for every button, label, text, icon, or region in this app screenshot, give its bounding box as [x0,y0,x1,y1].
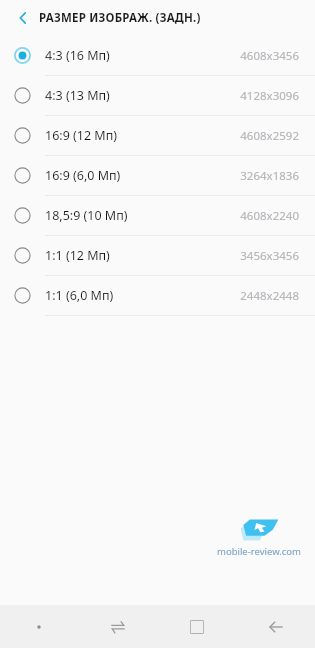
staticText: 4608x2592 [240,128,299,144]
staticText: 1:1 (6,0 Мп) [45,287,114,304]
staticText: 3456x3456 [240,248,299,264]
button[interactable]: Back [236,605,315,648]
staticText: 4608x2240 [240,208,299,224]
button[interactable]: Home [157,605,236,648]
button[interactable]: 16:9 (12 Мп) [0,116,315,155]
staticText: 16:9 (6,0 Мп) [45,167,121,184]
staticText: 4128x3096 [240,88,299,104]
staticText: 4608x3456 [240,48,299,64]
button[interactable]: 1:1 (6,0 Мп) [0,276,315,315]
staticText: 16:9 (12 Мп) [45,127,118,144]
staticText: РАЗМЕР ИЗОБРАЖ. (ЗАДН.) [39,10,201,26]
button[interactable]: Recents [78,605,157,648]
staticText: 3264x1836 [240,168,299,184]
staticText: 4:3 (13 Мп) [45,87,110,104]
button[interactable]: 18,5:9 (10 Мп) [0,196,315,235]
button[interactable]: 1:1 (12 Мп) [0,236,315,275]
staticText: 4:3 (16 Мп) [45,47,110,64]
staticText: 18,5:9 (10 Мп) [45,207,128,224]
button[interactable]: 16:9 (6,0 Мп) [0,156,315,195]
staticText: 2448x2448 [240,288,299,304]
button[interactable]: Back [8,3,38,33]
button[interactable]: Menu indicator [0,605,78,648]
staticText: 1:1 (12 Мп) [45,247,110,264]
staticText: mobile-review.com [217,545,301,558]
button[interactable]: 4:3 (16 Мп) [0,36,315,75]
button[interactable]: 4:3 (13 Мп) [0,76,315,115]
